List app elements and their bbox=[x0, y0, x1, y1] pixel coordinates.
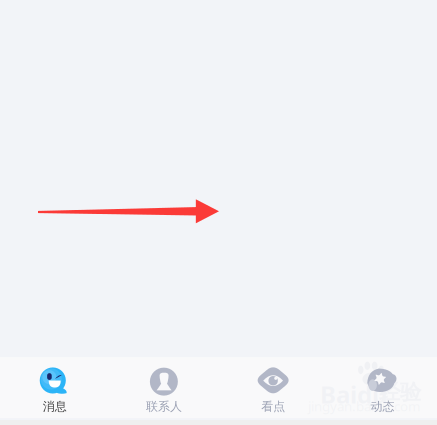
staticText: jingyan.baidu.com bbox=[308, 397, 420, 415]
button[interactable]: 动态 bbox=[328, 357, 437, 422]
button[interactable]: 消息 bbox=[0, 357, 109, 422]
staticText: 看点 bbox=[261, 399, 285, 414]
staticText: Baidu bbox=[320, 378, 388, 410]
staticText: 联系人 bbox=[146, 399, 182, 414]
staticText: 动态 bbox=[370, 399, 394, 414]
button[interactable]: 看点 bbox=[218, 357, 328, 422]
staticText: 消息 bbox=[43, 399, 67, 414]
button[interactable]: 联系人 bbox=[109, 357, 218, 422]
staticText: 经验 bbox=[379, 379, 421, 405]
